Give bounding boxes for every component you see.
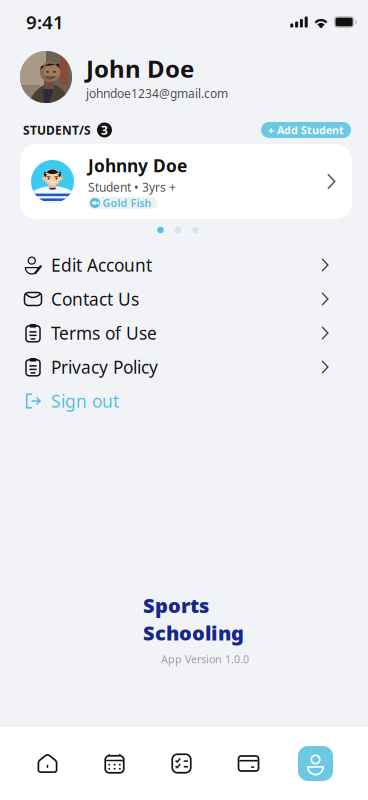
button[interactable]: Privacy Policy — [0, 350, 368, 384]
button[interactable]: Johnny Doe — [20, 144, 352, 219]
staticText: App Version 1.0.0 — [161, 652, 249, 666]
staticText: Sign out — [51, 389, 119, 412]
staticText: Johnny Doe — [88, 154, 187, 177]
button[interactable]: Contact Us — [0, 282, 368, 316]
staticText: + Add Student — [268, 123, 344, 137]
staticText: Gold Fish — [102, 196, 151, 210]
button[interactable]: Sign out — [0, 384, 368, 418]
staticText: Edit Account — [51, 253, 152, 276]
staticText: 3 — [101, 122, 108, 138]
staticText: Student • 3yrs + — [88, 179, 176, 195]
staticText: Terms of Use — [51, 321, 157, 344]
button[interactable]: Edit Account — [0, 248, 368, 282]
staticText: Privacy Policy — [51, 355, 158, 378]
button[interactable]: Home — [14, 752, 81, 774]
button[interactable]: Terms of Use — [0, 316, 368, 350]
button[interactable]: + Add Student — [261, 122, 351, 138]
button[interactable]: Profile — [282, 746, 349, 781]
button[interactable]: Schedule — [81, 752, 148, 774]
staticText: Sports — [143, 592, 209, 619]
button[interactable]: Payments — [215, 752, 282, 774]
staticText: Schooling — [143, 620, 244, 646]
staticText: John Doe — [86, 53, 194, 84]
staticText: Contact Us — [51, 287, 139, 310]
button[interactable]: Tasks — [148, 752, 215, 774]
staticText: STUDENT/S — [23, 122, 91, 138]
staticText: johndoe1234@gmail.com — [86, 85, 228, 101]
staticText: 9:41 — [26, 10, 64, 34]
